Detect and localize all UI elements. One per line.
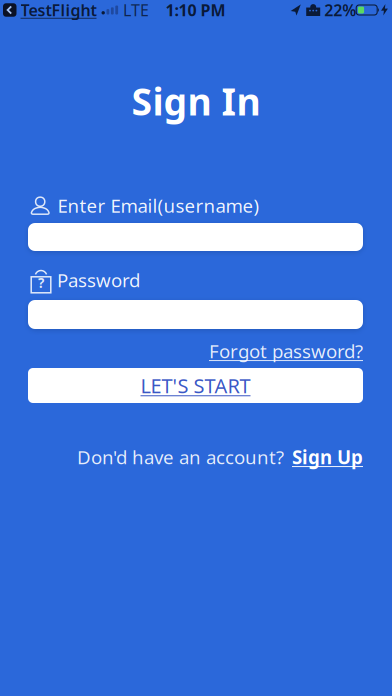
staticText: Enter Email(username) [57,193,259,218]
staticText: LET'S START [140,372,250,399]
staticText: Forgot password? [209,339,363,363]
staticText: 22% [324,0,356,21]
staticText: Password [57,268,140,292]
staticText: TestFlight [20,0,96,21]
button[interactable]: Back to TestFlight [3,0,96,21]
button[interactable]: Forgot password? [209,339,363,363]
button[interactable]: LET'S START [28,368,363,403]
staticText: Don'd have an account? [77,445,284,469]
staticText: Sign In [131,76,260,126]
button[interactable]: Email (username) text field [28,223,363,251]
button[interactable]: Sign Up [292,445,363,469]
staticText: ? [38,274,44,292]
staticText: LTE [123,0,149,21]
staticText: Sign Up [292,445,363,469]
button[interactable]: Password text field [28,300,363,329]
staticText: 1:10 PM [165,0,225,21]
